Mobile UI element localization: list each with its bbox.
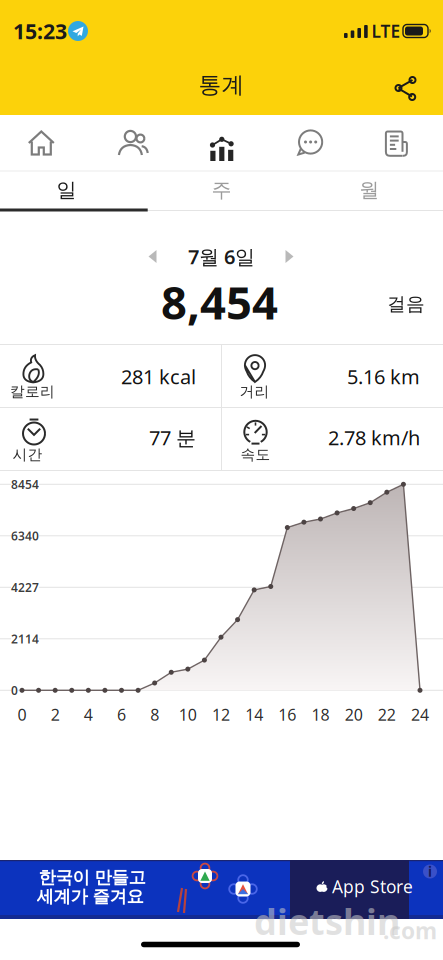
staticText: 2.78 km/h xyxy=(328,424,420,451)
staticText: 8 xyxy=(150,704,159,725)
button[interactable]: Statistics xyxy=(177,115,265,171)
staticText: 10 xyxy=(179,704,197,725)
staticText: 4 xyxy=(84,704,93,725)
button[interactable]: Previous day xyxy=(142,245,164,267)
staticText: 281 kcal xyxy=(121,363,196,390)
staticText: 15:23 xyxy=(13,17,67,45)
staticText: 6340 xyxy=(11,528,39,544)
staticText: 2114 xyxy=(11,631,39,647)
staticText: 0 xyxy=(17,704,26,725)
button[interactable]: Home xyxy=(0,115,88,171)
staticText: 24 xyxy=(411,704,429,725)
staticText: 월 xyxy=(359,178,379,202)
button[interactable]: News xyxy=(355,115,443,171)
staticText: 속도 xyxy=(240,445,270,463)
button[interactable]: App Store ad xyxy=(0,860,443,919)
staticText: 12 xyxy=(212,704,230,725)
button[interactable]: Next day xyxy=(278,245,300,267)
button[interactable]: 주 xyxy=(148,170,295,210)
staticText: 일 xyxy=(56,178,76,202)
staticText: 거리 xyxy=(239,382,269,400)
staticText: 8,454 xyxy=(161,272,278,332)
staticText: 16 xyxy=(278,704,296,725)
staticText: 7월 6일 xyxy=(188,243,255,270)
staticText: App Store xyxy=(332,875,413,898)
staticText: 14 xyxy=(245,704,263,725)
staticText: dietshin xyxy=(254,897,400,945)
staticText: i xyxy=(428,863,432,880)
staticText: 시간 xyxy=(12,445,42,463)
staticText: 20 xyxy=(345,704,363,725)
staticText: 2 xyxy=(51,704,60,725)
staticText: 통계 xyxy=(198,71,244,99)
staticText: 0 xyxy=(11,682,18,698)
staticText: 세계가 즐겨요 xyxy=(36,886,143,907)
button[interactable]: Share xyxy=(384,63,428,107)
button[interactable]: Friends xyxy=(89,115,177,171)
staticText: LTE xyxy=(371,19,400,42)
button[interactable]: 월 xyxy=(295,170,443,210)
staticText: 한국이 만들고 xyxy=(38,867,145,888)
staticText: 8454 xyxy=(11,476,39,492)
staticText: 걸음 xyxy=(387,292,425,315)
staticText: 주 xyxy=(211,178,231,202)
staticText: 22 xyxy=(378,704,396,725)
staticText: .com xyxy=(383,915,437,945)
staticText: 18 xyxy=(311,704,329,725)
button[interactable]: 일 xyxy=(0,170,140,210)
button[interactable]: Chat xyxy=(266,115,354,171)
staticText: 77 분 xyxy=(149,424,196,451)
staticText: 4227 xyxy=(11,579,39,595)
staticText: 5.16 km xyxy=(347,363,420,390)
staticText: 칼로리 xyxy=(10,382,55,400)
staticText: 6 xyxy=(117,704,126,725)
